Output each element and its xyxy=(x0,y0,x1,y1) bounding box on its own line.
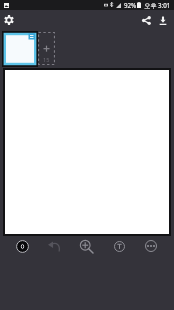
button[interactable]: Brush color xyxy=(12,236,32,256)
staticText: 92% xyxy=(124,1,137,9)
button[interactable]: Share xyxy=(138,11,154,29)
button[interactable]: More options xyxy=(141,236,161,256)
button[interactable]: Zoom in xyxy=(76,236,96,256)
button[interactable]: Text xyxy=(109,236,129,256)
staticText: 오후 3:01 xyxy=(144,1,171,9)
button[interactable]: Add page xyxy=(38,32,55,65)
button[interactable]: Save xyxy=(155,11,171,29)
button[interactable] xyxy=(2,31,38,67)
staticText: 15 xyxy=(43,56,50,64)
button[interactable]: Settings xyxy=(1,11,17,29)
button[interactable]: Undo xyxy=(44,236,64,256)
